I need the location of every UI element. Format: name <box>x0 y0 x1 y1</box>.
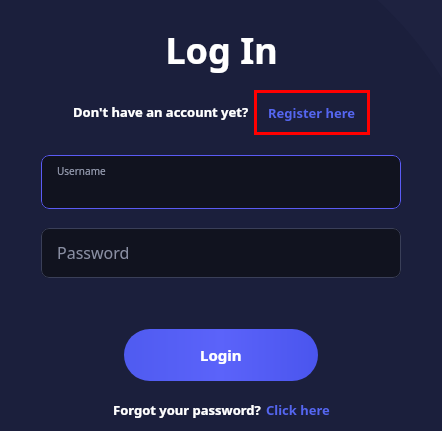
button[interactable]: Password <box>41 228 401 278</box>
staticText: Forgot your password? <box>113 401 261 419</box>
staticText: Username <box>57 164 106 178</box>
button[interactable]: Login <box>124 329 318 381</box>
button[interactable]: Username <box>41 155 401 209</box>
staticText: Click here <box>266 401 330 419</box>
button[interactable]: Click here <box>266 401 330 419</box>
staticText: Log In <box>165 26 278 75</box>
staticText: Login <box>200 345 242 365</box>
staticText: Password <box>57 242 130 264</box>
staticText: Register here <box>268 104 356 122</box>
button[interactable]: Register here <box>254 90 370 135</box>
staticText: Don't have an account yet? <box>73 103 249 121</box>
